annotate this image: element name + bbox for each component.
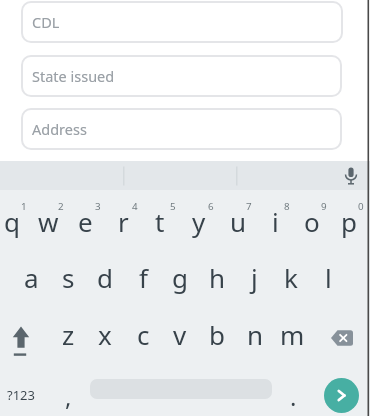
staticText: h	[209, 260, 226, 295]
button[interactable]: g	[161, 253, 199, 301]
staticText: x	[98, 317, 112, 352]
staticText: u	[230, 204, 247, 239]
staticText: ?123	[7, 386, 35, 404]
button[interactable]: a	[12, 253, 50, 301]
staticText: e	[78, 204, 93, 239]
button[interactable]: b	[198, 310, 236, 358]
button[interactable]: q	[0, 197, 31, 245]
staticText: f	[139, 260, 148, 295]
button[interactable]: ,	[49, 372, 87, 416]
staticText: 7	[246, 200, 252, 213]
staticText: n	[247, 317, 264, 352]
staticText: l	[325, 260, 332, 295]
staticText: o	[304, 204, 320, 239]
staticText: z	[62, 317, 75, 352]
button[interactable]: s	[49, 253, 87, 301]
staticText: p	[341, 204, 357, 239]
staticText: d	[97, 260, 113, 295]
button[interactable]: ?123	[2, 378, 40, 412]
button[interactable]: w	[29, 197, 67, 245]
staticText: y	[192, 204, 206, 239]
button[interactable]: h	[198, 253, 236, 301]
button[interactable]: f	[124, 253, 162, 301]
staticText: k	[284, 260, 298, 295]
button[interactable]: n	[236, 310, 274, 358]
button[interactable]: State issued	[21, 55, 342, 97]
button[interactable]: u	[219, 197, 257, 245]
staticText: c	[137, 317, 150, 352]
button[interactable]: k	[272, 253, 310, 301]
button[interactable]: i	[256, 197, 294, 245]
button[interactable]: y	[180, 197, 218, 245]
staticText: Address	[32, 119, 87, 139]
staticText: CDL	[32, 12, 60, 32]
staticText: ,	[65, 380, 72, 413]
button[interactable]: Address	[21, 108, 342, 150]
button[interactable]: t	[141, 197, 179, 245]
button[interactable]: z	[49, 310, 87, 358]
staticText: 3	[95, 200, 101, 213]
staticText: b	[209, 317, 225, 352]
button[interactable]: l	[309, 253, 347, 301]
staticText: 6	[208, 200, 214, 213]
staticText: State issued	[32, 66, 115, 86]
staticText: q	[4, 204, 20, 239]
button[interactable]: e	[66, 197, 104, 245]
button[interactable]: x	[86, 310, 124, 358]
button[interactable]: v	[161, 310, 199, 358]
staticText: a	[24, 260, 39, 295]
staticText: 0	[358, 200, 364, 213]
staticText: g	[172, 260, 188, 295]
staticText: 4	[132, 200, 138, 213]
staticText: j	[251, 260, 258, 295]
button[interactable]: m	[273, 310, 311, 358]
staticText: 2	[58, 200, 64, 213]
button[interactable]	[324, 378, 359, 413]
staticText: w	[38, 204, 59, 239]
staticText: .	[290, 380, 297, 413]
staticText: v	[173, 317, 187, 352]
button[interactable]: p	[330, 197, 368, 245]
staticText: 5	[170, 200, 176, 213]
button[interactable]: .	[274, 372, 312, 416]
button[interactable]	[322, 314, 366, 360]
staticText: 8	[284, 200, 290, 213]
button[interactable]: o	[293, 197, 331, 245]
staticText: 1	[21, 200, 27, 213]
button[interactable]: CDL	[21, 1, 343, 43]
staticText: i	[272, 204, 279, 239]
button[interactable]: j	[235, 253, 273, 301]
staticText: m	[280, 317, 305, 352]
staticText: r	[118, 204, 129, 239]
button[interactable]: r	[104, 197, 142, 245]
button[interactable]: c	[124, 310, 162, 358]
staticText: t	[155, 204, 165, 239]
button[interactable]: d	[86, 253, 124, 301]
staticText: 9	[321, 200, 327, 213]
staticText: s	[62, 260, 75, 295]
button[interactable]	[2, 314, 42, 360]
button[interactable]	[237, 161, 370, 190]
